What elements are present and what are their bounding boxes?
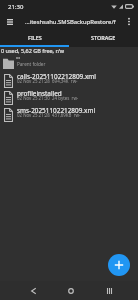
button[interactable]: Add — [108, 254, 130, 276]
button[interactable]: More options — [122, 15, 135, 28]
button[interactable]: FILES — [0, 30, 69, 45]
button[interactable]: Parent folder — [0, 55, 138, 72]
staticText: 02 Nov 25 21:28 437,69KB rw- — [17, 112, 81, 118]
button[interactable]: calls-20251102212809.xml — [0, 72, 138, 89]
button[interactable]: Recents — [100, 281, 118, 300]
staticText: STORAGE — [91, 34, 116, 41]
button[interactable]: profileinstalled — [0, 89, 138, 106]
staticText: calls-20251102212809.xml — [17, 72, 96, 81]
button[interactable]: Home — [62, 281, 80, 300]
staticText: FILES — [28, 34, 42, 41]
staticText: …iteshsahu.SMSBackupRestore/files — [25, 18, 116, 26]
button[interactable]: Menu — [4, 16, 15, 27]
button[interactable]: STORAGE — [69, 30, 138, 45]
button[interactable]: Back — [24, 281, 42, 300]
staticText: profileinstalled — [17, 89, 62, 98]
staticText: sms-20251102212809.xml — [17, 106, 96, 115]
staticText: 0 used, 5,62 GB free, r/w — [1, 47, 65, 54]
staticText: Parent folder — [17, 61, 46, 67]
staticText: 02 Nov 25 21:28 694,34K rw- — [17, 78, 78, 84]
staticText: 02 Nov 25 21:30 24 bytes rw- — [17, 95, 79, 101]
staticText: 21:30 — [8, 3, 24, 11]
button[interactable]: sms-20251102212809.xml — [0, 106, 138, 123]
